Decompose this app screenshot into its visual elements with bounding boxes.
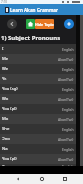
staticText: Ɔyɛ — [2, 164, 62, 166]
staticText: English — [62, 164, 74, 166]
button[interactable]: You (pl) — [0, 104, 83, 114]
staticText: Akan(Twi) — [58, 117, 74, 122]
button[interactable]: We — [0, 64, 83, 74]
staticText: 1) Subject Pronouns — [1, 34, 61, 42]
staticText: You (pl) — [2, 156, 58, 162]
staticText: English — [62, 87, 74, 92]
staticText: 7:10 — [1, 0, 7, 4]
staticText: Me — [2, 56, 58, 62]
staticText: Akan(Twi) — [58, 97, 74, 102]
staticText: Yɛ — [2, 76, 58, 82]
staticText: English — [62, 127, 74, 132]
staticText: Akan(Twi) — [58, 137, 74, 142]
button[interactable]: Me — [0, 54, 83, 64]
button[interactable]: Ɔyɛ — [0, 164, 83, 166]
button[interactable]: Back — [13, 174, 23, 184]
button[interactable]: Mo — [0, 114, 83, 124]
button[interactable]: App icon — [5, 7, 9, 13]
staticText: Wo — [2, 96, 58, 102]
staticText: You (sg) — [2, 86, 62, 92]
staticText: English — [62, 107, 74, 112]
staticText: Akan(Twi) — [58, 57, 74, 62]
button[interactable]: Back — [7, 19, 17, 29]
button[interactable]: I — [0, 44, 83, 54]
staticText: English — [62, 47, 74, 52]
button[interactable]: Home — [37, 174, 47, 184]
staticText: You (pl) — [2, 106, 62, 112]
staticText: Ɔno — [2, 136, 58, 142]
staticText: Akan(Twi) — [58, 77, 74, 82]
staticText: Na — [2, 146, 62, 152]
button[interactable]: Wo — [0, 94, 83, 104]
button[interactable]: She — [0, 124, 83, 134]
button[interactable]: Add — [64, 19, 74, 29]
staticText: English — [62, 67, 74, 72]
staticText: Mo — [2, 116, 58, 122]
staticText: She — [2, 126, 62, 132]
staticText: We — [2, 66, 62, 72]
button[interactable]: Hide Topics — [35, 19, 54, 29]
staticText: I — [2, 46, 62, 52]
staticText: Learn Akan Grammar — [10, 7, 59, 13]
staticText: English — [62, 147, 74, 152]
staticText: Hide Topics — [35, 22, 54, 27]
button[interactable]: You (sg) — [0, 84, 83, 94]
button[interactable]: Na — [0, 144, 83, 154]
button[interactable]: You (pl) — [0, 154, 83, 164]
button[interactable]: Yɛ — [0, 74, 83, 84]
button[interactable]: Recents — [60, 174, 70, 184]
button[interactable]: Ɔno — [0, 134, 83, 144]
button[interactable]: Home — [26, 19, 35, 29]
staticText: Akan(Twi) — [58, 157, 74, 162]
